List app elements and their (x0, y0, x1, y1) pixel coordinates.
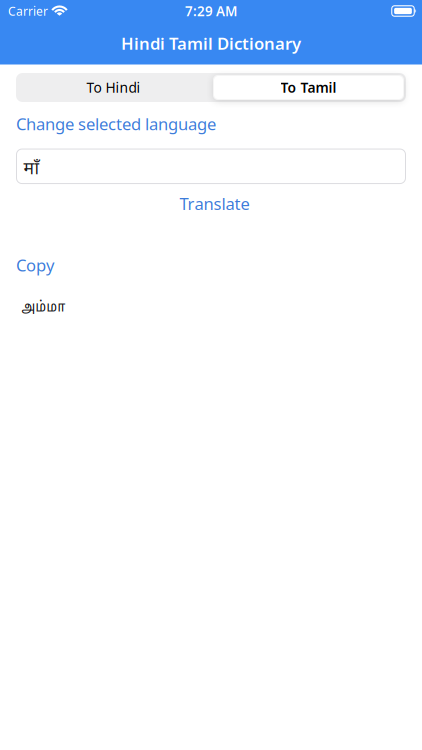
staticText: Translate (179, 192, 249, 214)
staticText: 7:29 AM (185, 2, 237, 20)
button[interactable]: माँ (16, 148, 406, 184)
staticText: Copy (16, 254, 54, 276)
button[interactable]: Translate (172, 192, 249, 214)
button[interactable]: To Tamil (211, 73, 406, 102)
staticText: அம்மா (21, 299, 65, 317)
button[interactable]: Copy (16, 254, 54, 276)
staticText: माँ (23, 156, 39, 179)
staticText: Change selected language (16, 113, 216, 135)
staticText: Carrier (8, 3, 48, 19)
staticText: To Tamil (280, 78, 336, 97)
button[interactable]: To Hindi (16, 73, 211, 102)
staticText: To Hindi (86, 78, 140, 97)
staticText: Hindi Tamil Dictionary (121, 32, 301, 54)
